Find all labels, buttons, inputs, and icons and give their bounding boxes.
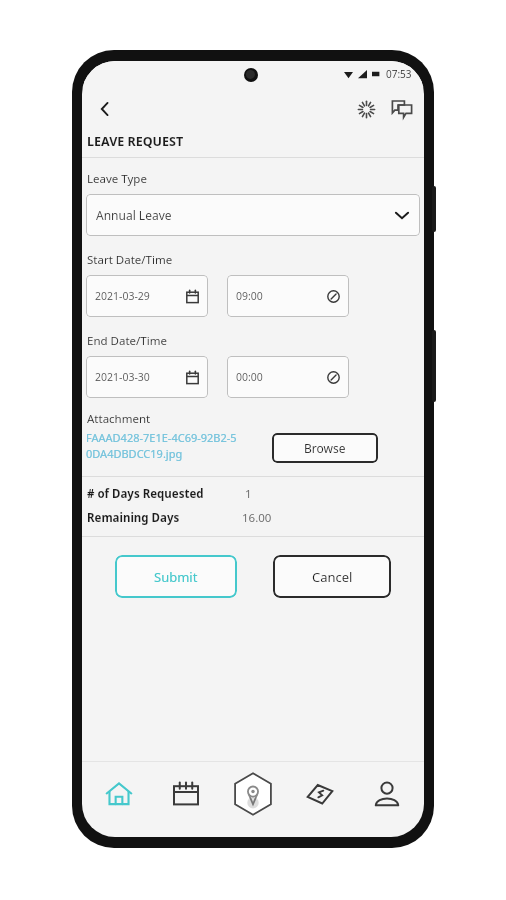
button[interactable]: Messages	[384, 91, 420, 127]
staticText: Leave Type	[87, 171, 147, 187]
button[interactable]: Cancel	[273, 555, 391, 598]
staticText: 1	[245, 486, 252, 502]
staticText: Annual Leave	[96, 207, 172, 223]
staticText: 00:00	[236, 370, 263, 384]
staticText: # of Days Requested	[87, 486, 204, 502]
button[interactable]: Home	[89, 764, 149, 824]
staticText: 07:53	[386, 67, 412, 81]
staticText: 2021-03-29	[95, 289, 150, 303]
button[interactable]: Submit	[115, 555, 237, 598]
button[interactable]: Browse	[272, 433, 378, 463]
button[interactable]: Location	[223, 764, 283, 824]
staticText: Start Date/Time	[87, 252, 173, 268]
button[interactable]: Expenses	[290, 764, 350, 824]
staticText: Browse	[304, 440, 346, 456]
button[interactable]: Refresh	[348, 91, 384, 127]
staticText: FAAAD428-7E1E-4C69-92B2-5	[86, 430, 237, 445]
button[interactable]: 2021-03-29	[86, 275, 208, 317]
button[interactable]: Annual Leave	[86, 194, 420, 236]
staticText: 09:00	[236, 289, 263, 303]
button[interactable]: 2021-03-30	[86, 356, 208, 398]
staticText: 16.00	[242, 510, 272, 526]
staticText: 2021-03-30	[95, 370, 150, 384]
button[interactable]: 09:00	[227, 275, 349, 317]
button[interactable]: Back	[86, 90, 124, 128]
staticText: Submit	[154, 568, 198, 586]
staticText: 0DA4DBDCC19.jpg	[86, 446, 183, 461]
staticText: Attachment	[87, 411, 151, 427]
button[interactable]: Profile	[357, 764, 417, 824]
staticText: Cancel	[312, 568, 353, 586]
button[interactable]: Calendar	[156, 764, 216, 824]
staticText: Remaining Days	[87, 510, 180, 526]
button[interactable]: 00:00	[227, 356, 349, 398]
staticText: End Date/Time	[87, 333, 167, 349]
staticText: LEAVE REQUEST	[87, 133, 184, 150]
